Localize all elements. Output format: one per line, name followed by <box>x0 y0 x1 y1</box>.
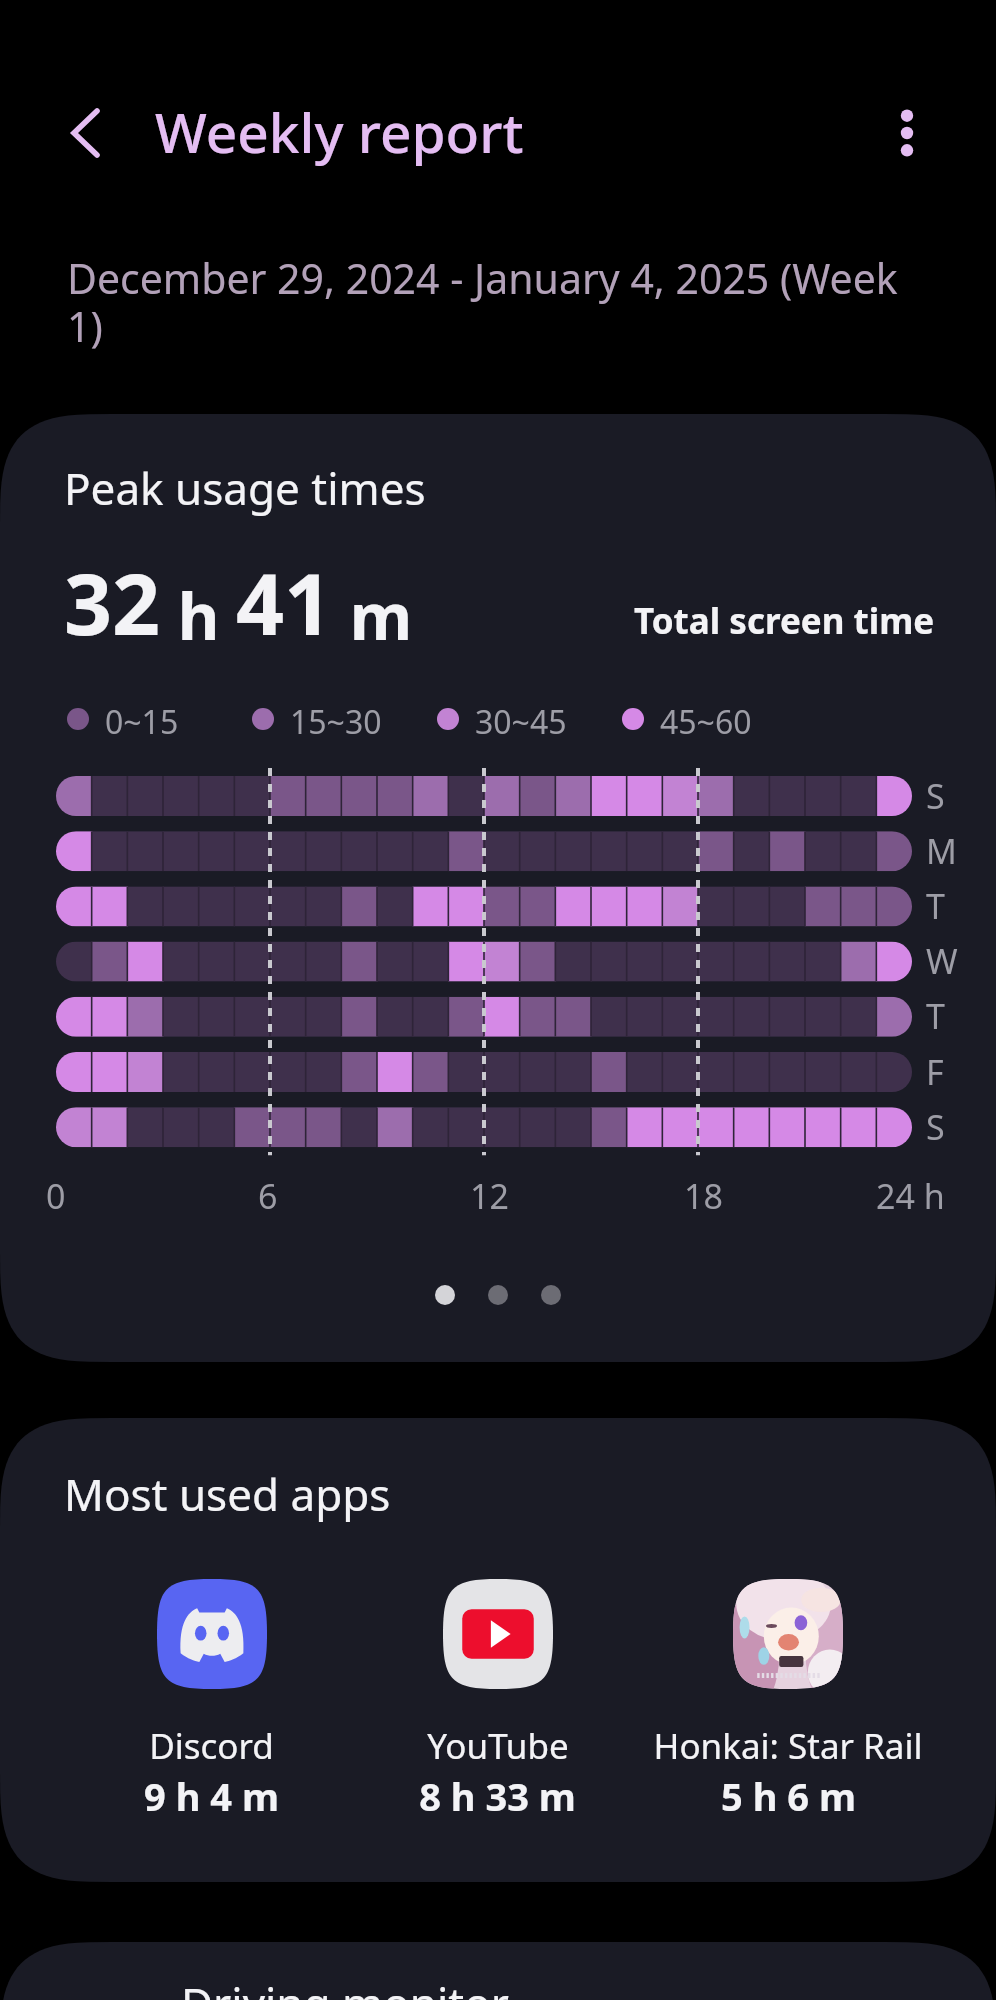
button[interactable]: Honkai: Star Rail <box>633 1579 943 1824</box>
staticText: T <box>926 993 945 1039</box>
staticText: 0 <box>46 1173 66 1219</box>
staticText: 9 h 4 m <box>144 1770 279 1822</box>
staticText: T <box>926 883 945 929</box>
staticText: F <box>926 1049 944 1095</box>
staticText: W <box>926 938 958 984</box>
staticText: 8 h 33 m <box>419 1770 576 1822</box>
staticText: December 29, 2024 - January 4, 2025 (Wee… <box>67 250 917 354</box>
button[interactable]: More options <box>867 93 947 173</box>
button[interactable]: Peak usage times <box>0 414 996 1362</box>
staticText: 6 <box>258 1173 278 1219</box>
staticText: Peak usage times <box>64 458 426 518</box>
button[interactable]: Most used apps <box>0 1418 996 1882</box>
staticText: M <box>926 828 957 874</box>
staticText: Total screen time <box>634 597 935 645</box>
staticText: Driving monitor <box>181 1973 510 2000</box>
staticText: Weekly report <box>155 94 524 169</box>
button[interactable]: Discord <box>56 1579 366 1824</box>
staticText: S <box>926 773 945 819</box>
staticText: 45~60 <box>660 700 752 744</box>
staticText: 15~30 <box>290 700 382 744</box>
staticText: 30~45 <box>475 700 567 744</box>
staticText: YouTube <box>427 1722 569 1770</box>
staticText: 24 h <box>876 1173 945 1219</box>
button[interactable]: Driving monitor <box>0 1942 996 2000</box>
button[interactable]: YouTube <box>342 1579 652 1824</box>
staticText: 0~15 <box>105 700 179 744</box>
staticText: Honkai: Star Rail <box>653 1722 923 1770</box>
staticText: Discord <box>149 1722 274 1770</box>
button[interactable]: Back <box>46 93 126 173</box>
staticText: 5 h 6 m <box>721 1770 856 1822</box>
staticText: m <box>333 572 413 659</box>
staticText: 12 <box>470 1173 509 1219</box>
staticText: Most used apps <box>64 1464 391 1524</box>
staticText: 41 <box>236 545 333 659</box>
staticText: 18 <box>684 1173 723 1219</box>
staticText: 32 <box>64 545 161 659</box>
staticText: h <box>161 572 236 659</box>
staticText: S <box>926 1104 945 1150</box>
